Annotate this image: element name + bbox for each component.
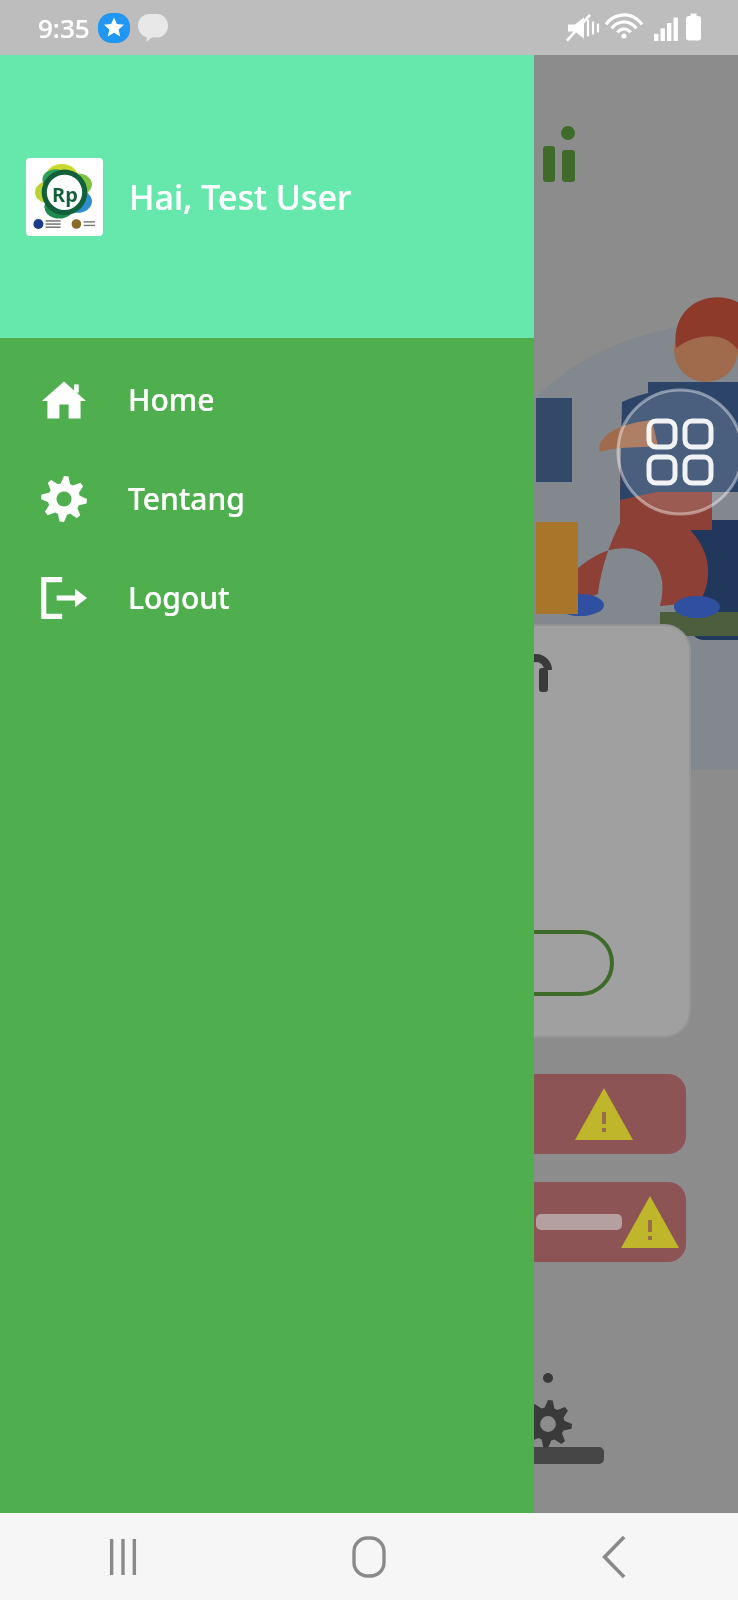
staticText: Logout [128, 577, 230, 618]
button[interactable]: Logout [0, 548, 534, 647]
staticText: Home [128, 379, 215, 420]
button[interactable]: Recent apps [91, 1525, 155, 1589]
staticText: Tentang [128, 478, 245, 519]
button[interactable]: Tentang [0, 449, 534, 548]
button[interactable]: Back [583, 1525, 647, 1589]
staticText: Rp [52, 181, 78, 208]
staticText: Hai, Test User [129, 174, 352, 220]
staticText: 9:35 [38, 10, 90, 45]
button[interactable]: Home [0, 350, 534, 449]
button[interactable]: Rp [0, 55, 534, 338]
button[interactable]: Home [337, 1525, 401, 1589]
